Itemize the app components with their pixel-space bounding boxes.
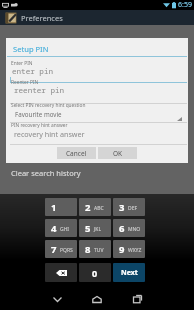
staticText: Next [121, 268, 138, 278]
staticText: 6:59 [178, 0, 192, 10]
button[interactable]: 9 [113, 240, 145, 258]
staticText: Cancel [66, 149, 87, 158]
button[interactable]: Cancel [57, 147, 96, 159]
staticText: enter pin [12, 66, 54, 76]
button[interactable]: 5 [79, 219, 111, 237]
staticText: reenter pin [14, 85, 65, 95]
staticText: PQRS [60, 247, 73, 254]
button[interactable]: 3 [113, 198, 145, 216]
button[interactable]: 7 [45, 240, 77, 258]
staticText: 7 [51, 243, 57, 256]
staticText: ABC [94, 205, 104, 212]
staticText: 8 [85, 243, 91, 256]
staticText: Reenter PIN [11, 79, 39, 86]
button[interactable]: 8 [79, 240, 111, 258]
staticText: Preferences [21, 13, 63, 23]
button[interactable]: 4 [45, 219, 77, 237]
staticText: Setup PIN [13, 44, 49, 54]
button[interactable]: Back [42, 288, 72, 310]
staticText: Select PIN recovery hint question [11, 102, 86, 109]
staticText: JKL [94, 226, 102, 233]
staticText: Set default sort [11, 158, 47, 165]
staticText: 3 [119, 201, 125, 214]
staticText: 5 [85, 222, 91, 235]
staticText: 4 [51, 222, 57, 235]
staticText: Clear search history [11, 168, 81, 178]
button[interactable]: Delete [45, 263, 77, 282]
button[interactable]: Next [113, 263, 145, 282]
staticText: DEF [128, 205, 138, 212]
staticText: TUV [94, 247, 104, 254]
button[interactable]: 0 [79, 263, 111, 282]
button[interactable]: 1 [45, 198, 77, 216]
staticText: MNO [128, 226, 141, 233]
staticText: OK [113, 149, 123, 158]
button[interactable]: Recents [122, 288, 152, 310]
staticText: 1 [51, 201, 57, 214]
staticText: Enter PIN [11, 60, 33, 67]
staticText: Favourite movie [15, 110, 62, 118]
staticText: 9 [119, 243, 125, 256]
staticText: GHI [60, 226, 70, 233]
staticText: 0 [92, 267, 98, 279]
button[interactable]: 6 [113, 219, 145, 237]
staticText: 2 [85, 201, 91, 214]
staticText: 6 [119, 222, 125, 235]
staticText: recovery hint answer [14, 129, 85, 139]
button[interactable]: Home [82, 288, 112, 310]
button[interactable]: 2 [79, 198, 111, 216]
button[interactable]: OK [98, 147, 137, 159]
staticText: PIN recovery hint answer [11, 122, 68, 129]
staticText: WXYZ [128, 247, 142, 254]
